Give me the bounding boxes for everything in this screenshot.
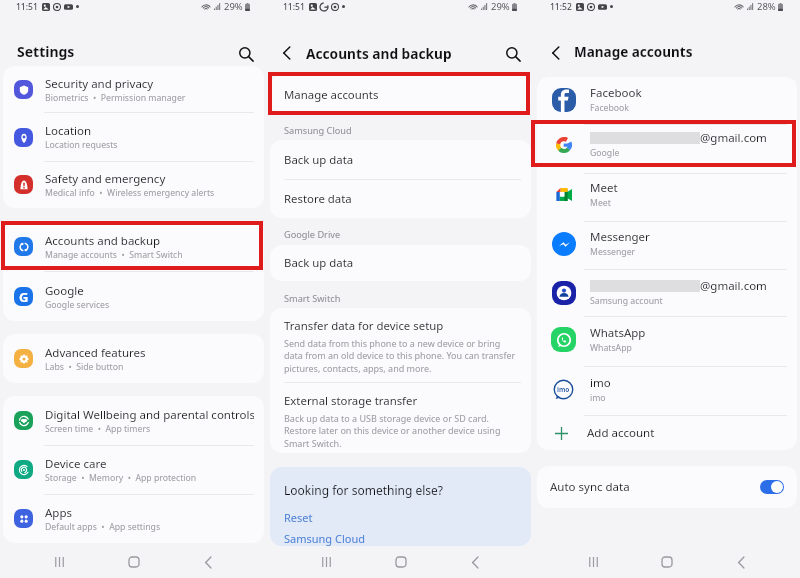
staticText: Safety and emergency bbox=[45, 171, 166, 187]
button[interactable]: @gmail.com bbox=[537, 268, 797, 317]
button[interactable]: Advanced features bbox=[3, 334, 264, 383]
button[interactable]: Location bbox=[3, 113, 264, 161]
staticText: Storage • Memory • App protection bbox=[45, 472, 197, 484]
staticText: Accounts and backup bbox=[306, 44, 452, 63]
staticText: imo bbox=[557, 385, 570, 394]
button[interactable]: Samsung Cloud bbox=[284, 531, 365, 546]
button[interactable]: Recents bbox=[578, 547, 608, 577]
staticText: Auto sync data bbox=[550, 479, 630, 495]
staticText: Digital Wellbeing and parental controls bbox=[45, 407, 254, 423]
staticText: External storage transfer bbox=[284, 393, 418, 409]
button[interactable]: Digital Wellbeing and parental controls bbox=[3, 396, 264, 445]
button[interactable]: Auto sync data bbox=[537, 466, 797, 508]
staticText: Looking for something else? bbox=[284, 482, 444, 498]
button[interactable]: Transfer data for device setup bbox=[270, 308, 531, 375]
staticText: 11:52 bbox=[550, 1, 572, 13]
staticText: Samsung Cloud bbox=[284, 531, 365, 546]
staticText: 28% bbox=[757, 0, 776, 13]
button[interactable]: WhatsApp bbox=[537, 315, 797, 364]
button[interactable]: Search bbox=[503, 44, 523, 64]
staticText: Facebook bbox=[590, 85, 642, 101]
staticText: Meet bbox=[590, 197, 611, 209]
staticText: Add account bbox=[587, 425, 655, 441]
staticText: Google services bbox=[45, 299, 110, 311]
staticText: Apps bbox=[45, 505, 73, 521]
button[interactable]: Accounts and backup bbox=[3, 222, 264, 271]
staticText: G bbox=[19, 288, 29, 306]
button[interactable]: Home bbox=[119, 547, 149, 577]
staticText: imo bbox=[590, 375, 611, 391]
button[interactable]: Safety and emergency bbox=[3, 161, 264, 208]
button[interactable]: Back up data bbox=[270, 245, 531, 281]
staticText: 29% bbox=[491, 0, 510, 13]
button[interactable]: Back bbox=[548, 42, 564, 64]
staticText: Smart Switch bbox=[284, 292, 341, 305]
button[interactable]: Apps bbox=[3, 494, 264, 543]
staticText: Samsung account bbox=[590, 295, 663, 307]
staticText: Restore data bbox=[284, 191, 352, 207]
staticText: 29% bbox=[224, 0, 243, 13]
staticText: Location bbox=[45, 123, 92, 139]
button[interactable]: imo bbox=[537, 365, 797, 414]
staticText: Back up data bbox=[284, 255, 354, 271]
staticText: Google bbox=[590, 147, 620, 159]
staticText: Security and privacy bbox=[45, 76, 154, 92]
button[interactable]: Device care bbox=[3, 445, 264, 494]
staticText: Medical info • Wireless emergency alerts bbox=[45, 187, 215, 199]
button[interactable]: Back bbox=[460, 547, 490, 577]
staticText: Google bbox=[45, 283, 84, 299]
staticText: Location requests bbox=[45, 139, 118, 151]
staticText: Reset bbox=[284, 510, 313, 525]
button[interactable]: Back bbox=[193, 547, 223, 577]
button[interactable]: External storage transfer bbox=[270, 383, 531, 450]
button[interactable]: Home bbox=[652, 547, 682, 577]
staticText: Messenger bbox=[590, 229, 650, 245]
staticText: Messenger bbox=[590, 246, 636, 258]
staticText: Settings bbox=[17, 42, 75, 61]
button[interactable]: Search bbox=[236, 44, 256, 64]
staticText: Samsung Cloud bbox=[284, 124, 352, 137]
button[interactable]: Home bbox=[386, 547, 416, 577]
staticText: @gmail.com bbox=[700, 278, 767, 294]
staticText: imo bbox=[590, 392, 606, 404]
staticText: Manage accounts bbox=[284, 87, 379, 103]
staticText: Back up data to a USB storage device or … bbox=[284, 412, 517, 450]
staticText: Send data from this phone to a new devic… bbox=[284, 337, 517, 375]
staticText: @gmail.com bbox=[700, 130, 767, 146]
staticText: WhatsApp bbox=[590, 342, 632, 354]
button[interactable]: Add account bbox=[537, 416, 797, 450]
staticText: Default apps • App settings bbox=[45, 521, 161, 533]
button[interactable]: Back bbox=[726, 547, 756, 577]
staticText: Device care bbox=[45, 456, 107, 472]
button[interactable]: Restore data bbox=[270, 179, 531, 218]
button[interactable]: Back bbox=[279, 42, 295, 64]
button[interactable]: Meet bbox=[537, 170, 797, 219]
staticText: Screen time • App timers bbox=[45, 423, 151, 435]
button[interactable]: G bbox=[3, 272, 264, 321]
button[interactable]: Reset bbox=[284, 510, 313, 525]
staticText: Manage accounts • Smart Switch bbox=[45, 249, 183, 261]
staticText: WhatsApp bbox=[590, 325, 646, 341]
button[interactable]: Messenger bbox=[537, 219, 797, 268]
staticText: Google Drive bbox=[284, 228, 341, 241]
staticText: Meet bbox=[590, 180, 618, 196]
staticText: Advanced features bbox=[45, 345, 146, 361]
staticText: Facebook bbox=[590, 102, 629, 114]
staticText: Biometrics • Permission manager bbox=[45, 92, 186, 104]
staticText: Accounts and backup bbox=[45, 233, 161, 249]
button[interactable]: Recents bbox=[44, 547, 74, 577]
button[interactable]: Manage accounts bbox=[270, 75, 531, 114]
staticText: 11:51 bbox=[16, 1, 38, 13]
button[interactable]: Recents bbox=[311, 547, 341, 577]
button[interactable]: @gmail.com bbox=[537, 120, 797, 169]
staticText: 11:51 bbox=[283, 1, 305, 13]
button[interactable]: Back up data bbox=[270, 140, 531, 179]
button[interactable]: Facebook bbox=[537, 77, 797, 124]
staticText: Manage accounts bbox=[574, 43, 693, 61]
staticText: Back up data bbox=[284, 152, 354, 168]
staticText: Transfer data for device setup bbox=[284, 318, 444, 334]
button[interactable]: Security and privacy bbox=[3, 66, 264, 113]
staticText: Labs • Side button bbox=[45, 361, 124, 373]
